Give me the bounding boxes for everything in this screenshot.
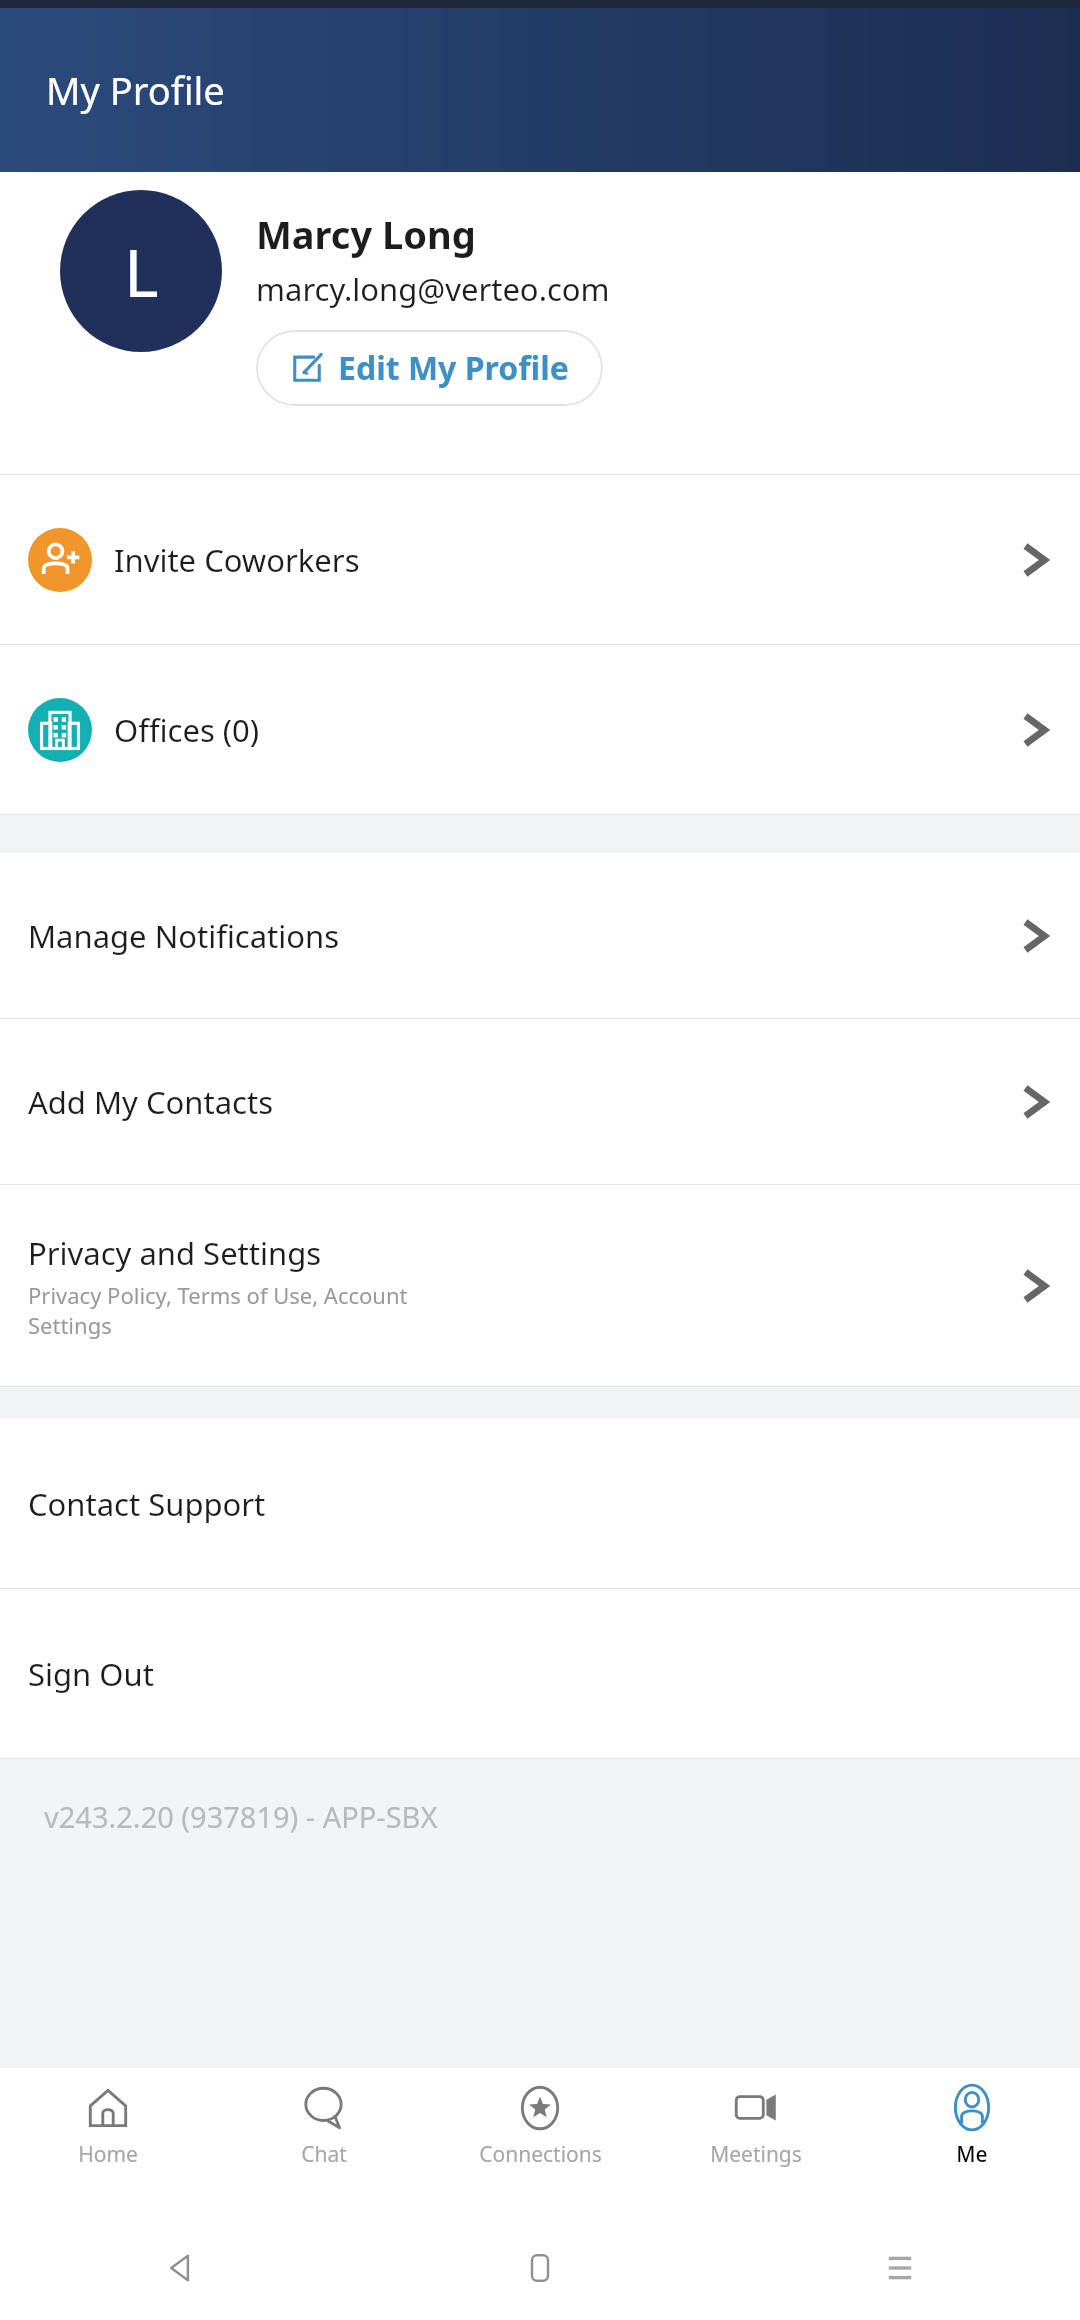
staticText: Home <box>78 2140 138 2169</box>
staticText: Offices (0) <box>114 709 260 751</box>
staticText: Add My Contacts <box>28 1081 273 1123</box>
staticText: Connections <box>479 2140 602 2169</box>
button[interactable]: Edit My Profile <box>256 330 603 406</box>
button[interactable]: Meetings <box>648 2068 864 2216</box>
staticText: Meetings <box>710 2140 802 2169</box>
button[interactable]: Contact Support <box>0 1419 1080 1589</box>
button[interactable]: Invite Coworkers <box>0 475 1080 645</box>
staticText: Edit My Profile <box>338 346 569 390</box>
staticText: L <box>124 226 159 316</box>
button[interactable]: Offices (0) <box>0 645 1080 815</box>
staticText: v243.2.20 (937819) - APP-SBX <box>44 1797 438 1836</box>
staticText: Sign Out <box>28 1653 154 1695</box>
staticText: Me <box>956 2140 988 2169</box>
staticText: Privacy and Settings <box>28 1232 322 1274</box>
staticText: Privacy Policy, Terms of Use, Account Se… <box>28 1280 408 1340</box>
staticText: Marcy Long <box>256 208 476 260</box>
button[interactable]: Privacy and Settings <box>0 1185 1080 1387</box>
staticText: Manage Notifications <box>28 915 340 957</box>
button[interactable]: Me <box>864 2068 1080 2216</box>
button[interactable]: Connections <box>432 2068 648 2216</box>
staticText: My Profile <box>46 64 225 116</box>
button[interactable]: Manage Notifications <box>0 853 1080 1019</box>
button[interactable]: Chat <box>216 2068 432 2216</box>
button[interactable]: Sign Out <box>0 1589 1080 1759</box>
button[interactable]: Home <box>0 2068 216 2216</box>
staticText: Invite Coworkers <box>114 539 360 581</box>
button[interactable]: Add My Contacts <box>0 1019 1080 1185</box>
staticText: Chat <box>301 2140 347 2169</box>
staticText: Contact Support <box>28 1483 266 1525</box>
staticText: marcy.long@verteo.com <box>256 268 610 310</box>
